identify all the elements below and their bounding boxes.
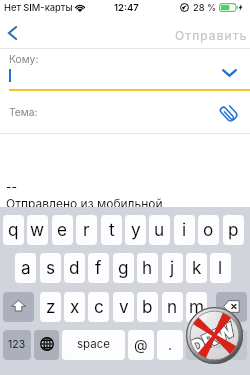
staticText: @ [134, 336, 148, 353]
button[interactable]: Backspace [216, 292, 247, 322]
button[interactable]: j [162, 253, 183, 283]
button[interactable]: p [223, 215, 244, 245]
staticText: x [70, 296, 80, 317]
button[interactable]: b [137, 292, 158, 322]
staticText: Нет SIM-карты [4, 2, 73, 13]
button[interactable]: Add recipients [216, 60, 242, 86]
button[interactable]: n [162, 292, 183, 322]
staticText: c [94, 296, 104, 317]
button[interactable]: w [27, 215, 48, 245]
button[interactable]: space [62, 330, 125, 360]
button[interactable]: r [76, 215, 97, 245]
staticText: . [168, 336, 173, 353]
staticText: DRW [186, 318, 239, 359]
staticText: l [218, 257, 223, 278]
staticText: j [170, 257, 175, 278]
staticText: k [192, 257, 202, 278]
button[interactable]: e [52, 215, 73, 245]
staticText: n [167, 296, 178, 317]
staticText: y [131, 219, 141, 240]
button[interactable]: Attach file [216, 100, 241, 125]
staticText: return [202, 338, 232, 351]
staticText: w [30, 219, 45, 240]
staticText: Тема: [9, 106, 38, 118]
button[interactable]: m [186, 292, 207, 322]
staticText: f [95, 257, 102, 278]
staticText: g [118, 257, 129, 278]
button[interactable]: c [88, 292, 109, 322]
button[interactable]: i [174, 215, 195, 245]
button[interactable]: a [15, 253, 36, 283]
button[interactable]: k [186, 253, 207, 283]
button[interactable]: x [64, 292, 85, 322]
button[interactable]: o [198, 215, 219, 245]
staticText: i [182, 219, 187, 240]
staticText: q [8, 219, 19, 240]
staticText: u [154, 219, 165, 240]
staticText: Отправлено из мобильной [6, 196, 163, 211]
button[interactable]: . [157, 330, 183, 360]
button[interactable]: d [64, 253, 85, 283]
staticText: r [83, 219, 90, 240]
button[interactable]: u [149, 215, 170, 245]
button[interactable]: Back [1, 22, 23, 44]
button[interactable]: g [113, 253, 134, 283]
staticText: Отправить [175, 28, 248, 43]
button[interactable]: Отправить [172, 26, 250, 44]
staticText: 12:47 [114, 2, 139, 13]
staticText: Кому: [9, 53, 39, 65]
button[interactable]: 123 [3, 330, 31, 360]
staticText: z [46, 296, 56, 317]
button[interactable]: t [101, 215, 122, 245]
staticText: m [189, 296, 205, 317]
button[interactable]: return [186, 330, 247, 360]
staticText: 123 [8, 338, 26, 351]
staticText: p [228, 219, 239, 240]
staticText: h [142, 257, 153, 278]
button[interactable]: q [3, 215, 24, 245]
button[interactable]: z [40, 292, 61, 322]
button[interactable]: v [113, 292, 134, 322]
button[interactable]: @ [128, 330, 154, 360]
button[interactable]: l [210, 253, 231, 283]
staticText: space [77, 337, 110, 351]
button[interactable]: Shift [3, 292, 34, 322]
staticText: 28 % [193, 2, 217, 13]
staticText: t [109, 219, 115, 240]
staticText: b [142, 296, 153, 317]
staticText: -- [6, 179, 18, 194]
staticText: d [69, 257, 80, 278]
staticText: o [203, 219, 214, 240]
button[interactable]: Switch keyboard [34, 330, 59, 360]
staticText: DRW [186, 318, 239, 359]
button[interactable]: y [125, 215, 146, 245]
button[interactable]: h [137, 253, 158, 283]
staticText: e [57, 219, 68, 240]
button[interactable]: s [40, 253, 61, 283]
staticText: s [46, 257, 56, 278]
staticText: v [119, 296, 129, 317]
staticText: a [21, 257, 31, 278]
button[interactable]: f [88, 253, 109, 283]
